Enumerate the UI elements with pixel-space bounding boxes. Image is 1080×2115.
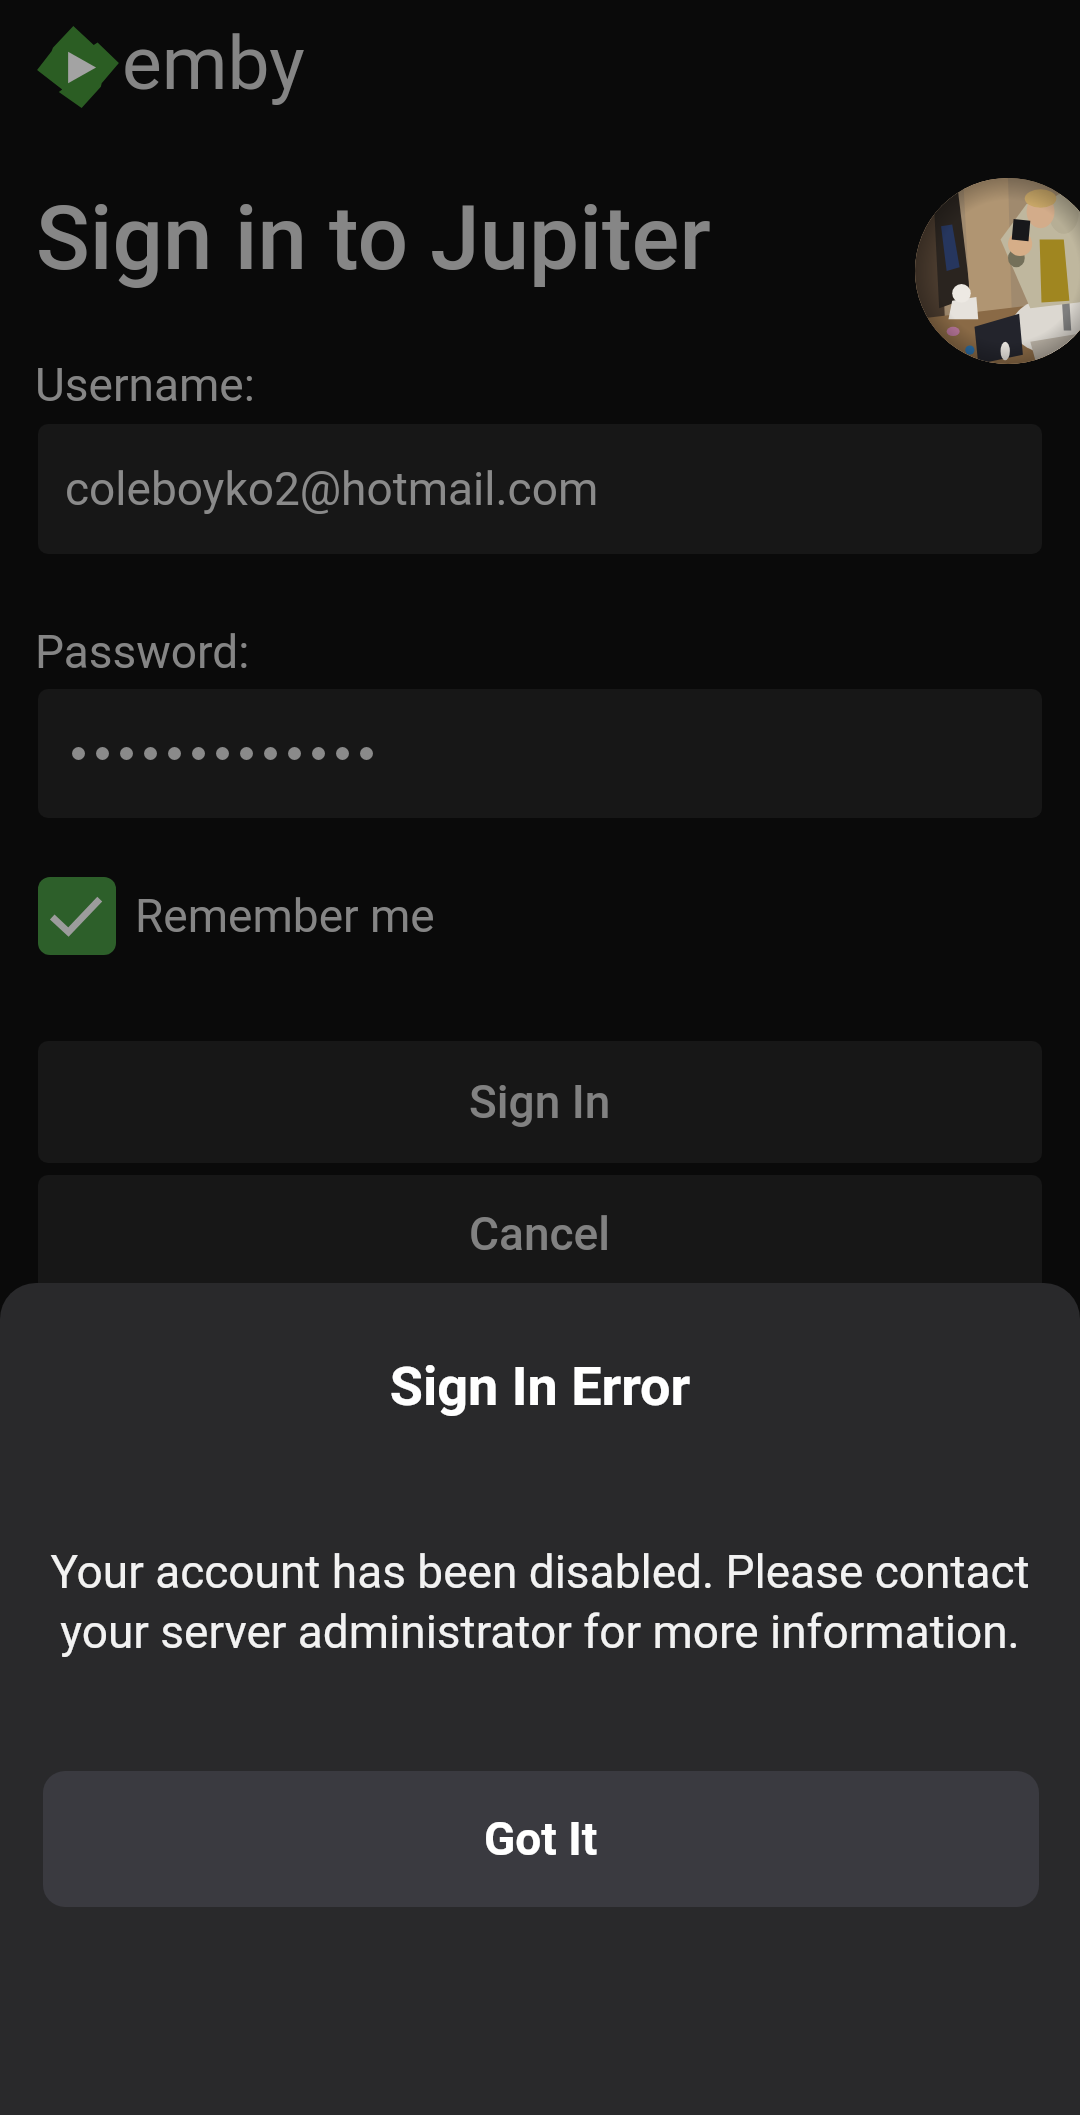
staticText: coleboyko2@hotmail.com — [65, 462, 599, 516]
staticText: Cancel — [469, 1207, 611, 1261]
staticText: Your account has been disabled. Please c… — [42, 1545, 1038, 1659]
staticText: Username: — [35, 358, 255, 412]
staticText: emby — [122, 19, 305, 107]
button[interactable]: Cancel — [38, 1175, 1042, 1297]
staticText: Password: — [35, 625, 250, 679]
button[interactable] — [38, 689, 1042, 818]
button[interactable]: coleboyko2@hotmail.com — [38, 424, 1042, 554]
staticText: Remember me — [135, 889, 435, 943]
button[interactable]: Got It — [43, 1771, 1039, 1907]
staticText: Sign in to Jupiter — [36, 186, 711, 290]
button[interactable]: User avatar — [915, 178, 1080, 364]
staticText: Got It — [484, 1812, 598, 1866]
button[interactable]: Remember me — [38, 877, 435, 955]
button[interactable]: Sign In — [38, 1041, 1042, 1163]
staticText: Sign In Error — [0, 1355, 1080, 1418]
staticText: Sign In — [469, 1075, 611, 1129]
